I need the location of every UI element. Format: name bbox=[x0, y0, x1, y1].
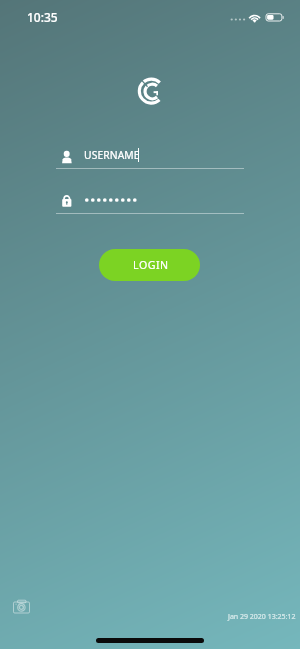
staticText: USERNAME bbox=[84, 148, 140, 162]
button[interactable] bbox=[56, 188, 244, 220]
staticText: Jan 29 2020 13:25:12 bbox=[228, 612, 296, 622]
button[interactable]: LOGIN bbox=[99, 249, 200, 281]
button[interactable]: Screenshot bbox=[12, 598, 31, 615]
staticText: LOGIN bbox=[133, 258, 169, 272]
staticText: 10:35 bbox=[27, 9, 58, 25]
button[interactable]: USERNAME bbox=[56, 142, 244, 174]
